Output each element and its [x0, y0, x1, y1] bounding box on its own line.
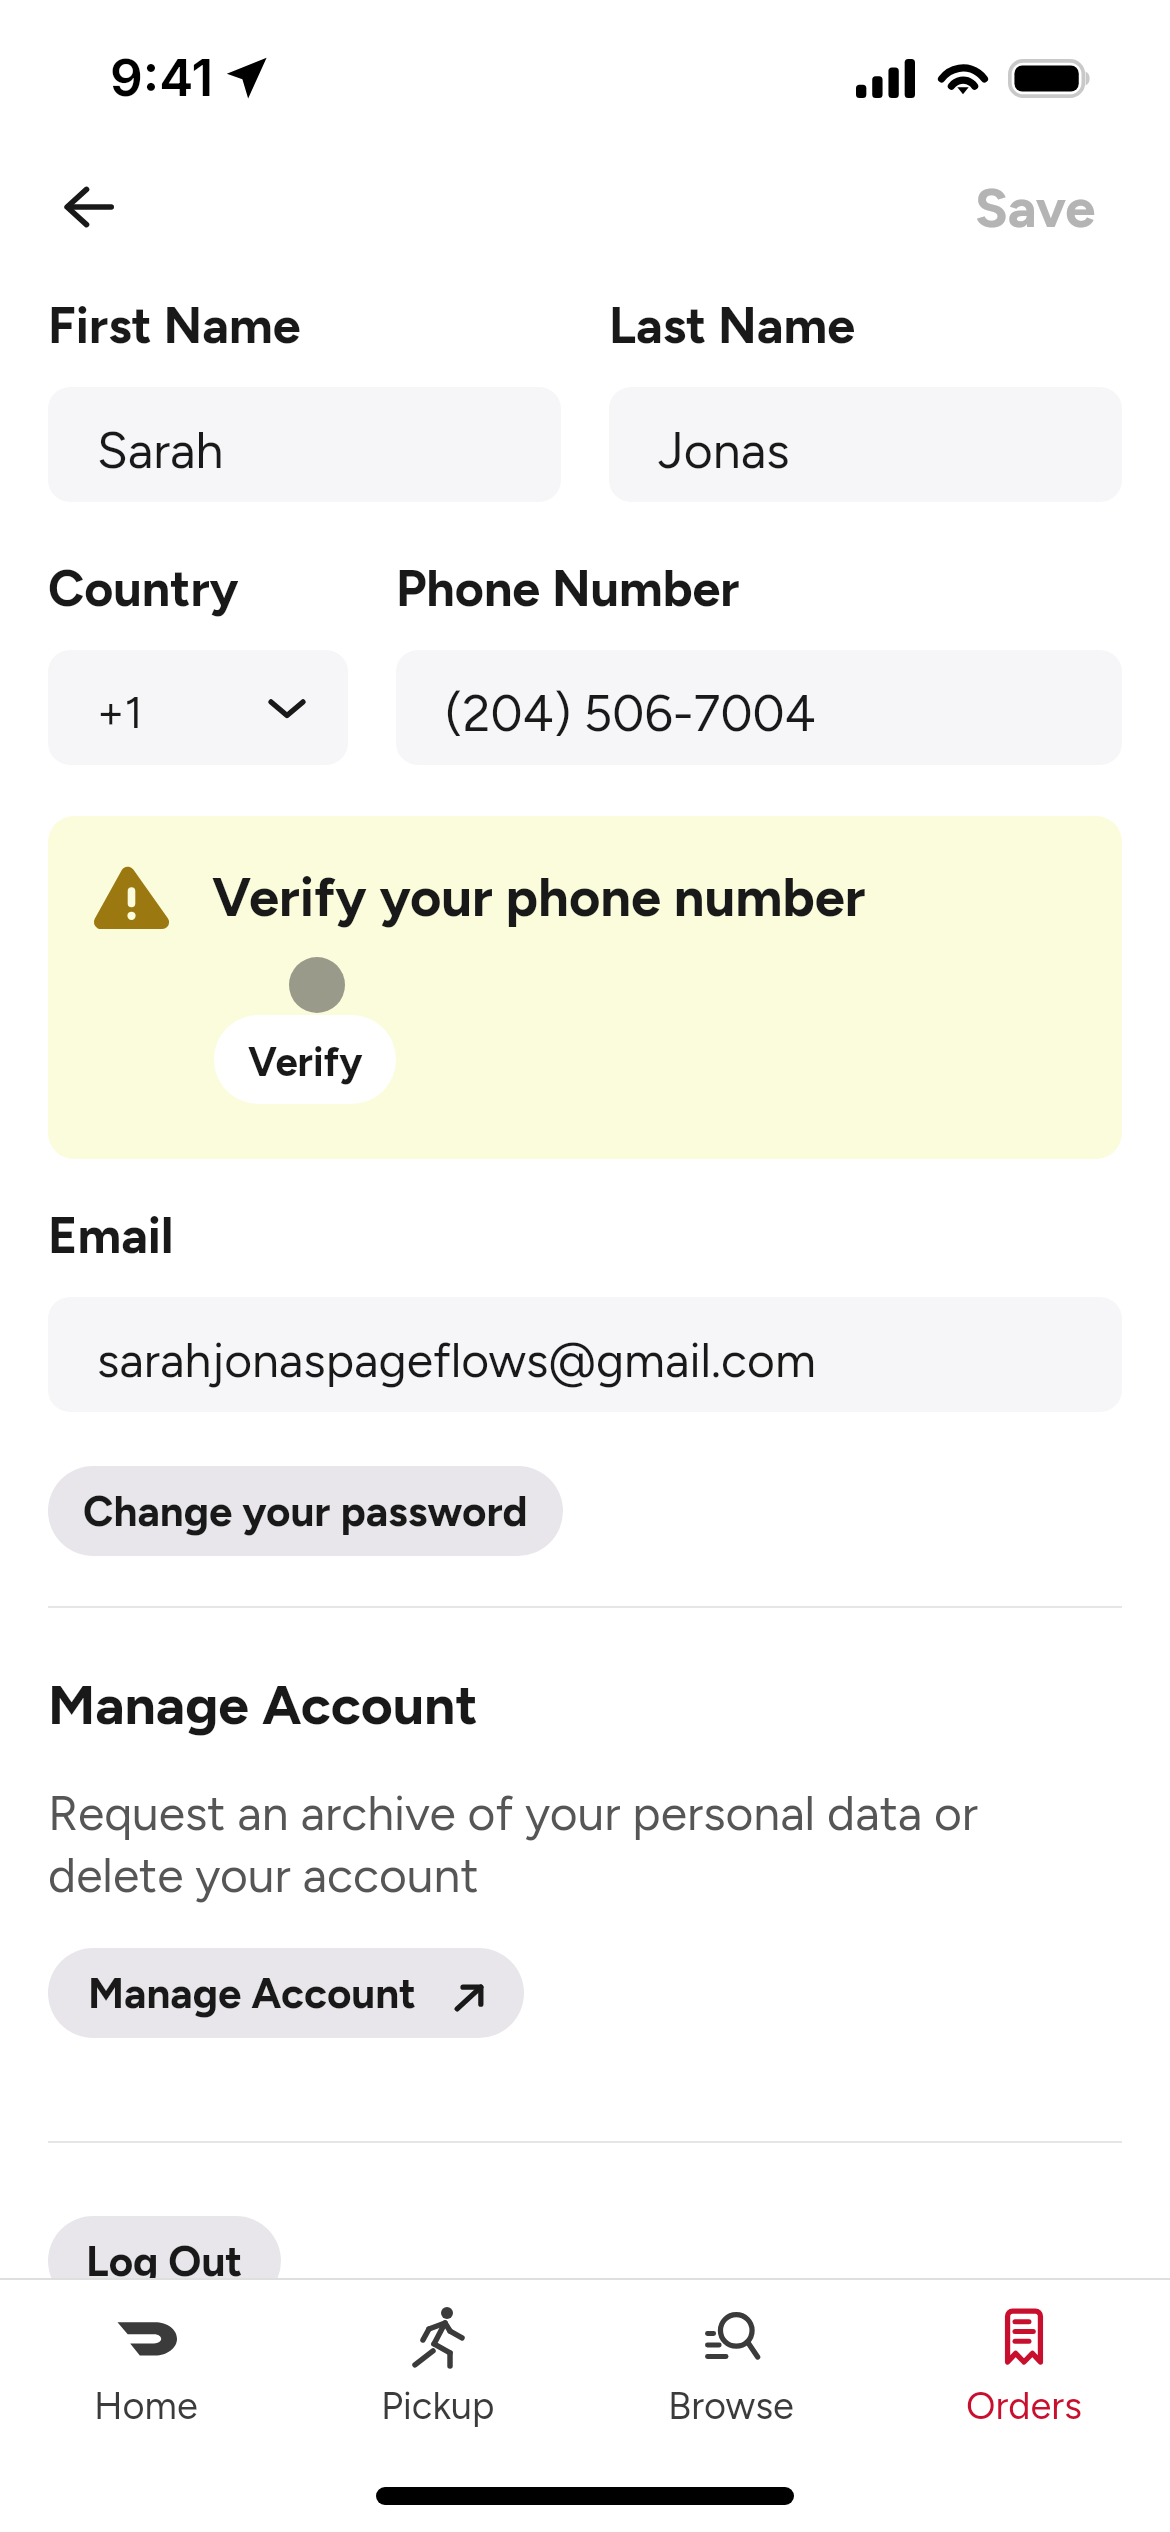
staticText: Manage Account: [48, 1672, 478, 1738]
staticText: Orders: [966, 2383, 1082, 2429]
staticText: sarahjonaspageflows@gmail.com: [97, 1331, 816, 1389]
staticText: Country: [48, 558, 239, 618]
staticText: 9:41: [110, 47, 214, 109]
button[interactable]: Jonas: [609, 387, 1122, 502]
staticText: Save: [975, 176, 1096, 241]
button[interactable]: Verify: [214, 1015, 396, 1104]
button[interactable]: Home: [0, 2280, 292, 2456]
button[interactable]: Orders: [877, 2280, 1170, 2456]
staticText: (204) 506-7004: [445, 683, 816, 743]
button[interactable]: Pickup: [292, 2280, 584, 2456]
staticText: Log Out: [86, 2236, 243, 2286]
staticText: Request an archive of your personal data…: [48, 1784, 1048, 1904]
staticText: Last Name: [609, 295, 855, 355]
button[interactable]: Browse: [584, 2280, 877, 2456]
staticText: Sarah: [97, 420, 224, 480]
staticText: First Name: [48, 295, 301, 355]
button[interactable]: sarahjonaspageflows@gmail.com: [48, 1297, 1122, 1412]
button[interactable]: Log Out: [48, 2216, 281, 2306]
staticText: Phone Number: [396, 558, 740, 618]
staticText: Jonas: [658, 420, 790, 480]
staticText: Verify: [248, 1038, 363, 1086]
button[interactable]: Sarah: [48, 387, 561, 502]
staticText: Home: [94, 2383, 198, 2429]
staticText: Browse: [668, 2383, 794, 2429]
staticText: Manage Account: [88, 1968, 417, 2018]
button[interactable]: Manage Account: [48, 1948, 524, 2038]
staticText: +1: [97, 686, 143, 739]
staticText: Email: [48, 1205, 174, 1265]
button[interactable]: (204) 506-7004: [396, 650, 1122, 765]
staticText: Change your password: [83, 1486, 528, 1536]
staticText: Pickup: [381, 2383, 495, 2429]
button[interactable]: Save: [931, 162, 1140, 255]
button[interactable]: Change your password: [48, 1466, 563, 1556]
button[interactable]: Country code +1: [48, 650, 348, 765]
staticText: Verify your phone number: [212, 865, 866, 930]
button[interactable]: Back: [41, 159, 137, 255]
